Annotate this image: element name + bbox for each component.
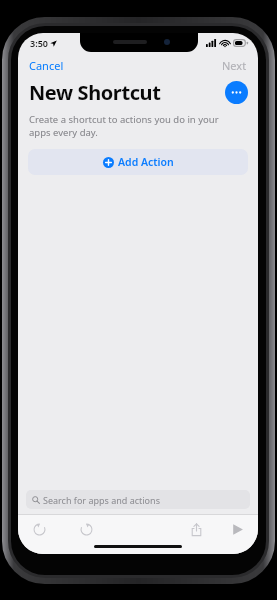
staticText: New Shortcut (29, 79, 161, 106)
button[interactable]: Run (227, 519, 247, 539)
staticText: 3:50 (30, 37, 48, 49)
staticText: Cancel (29, 58, 64, 73)
button[interactable]: Add Action (28, 149, 248, 175)
staticText: Add Action (118, 155, 174, 169)
button[interactable]: Share (186, 519, 206, 539)
button[interactable]: Search for apps and actions (26, 490, 250, 509)
button[interactable]: More options (225, 81, 248, 104)
button[interactable]: Redo (76, 519, 96, 539)
staticText: Search for apps and actions (43, 494, 160, 506)
staticText: Create a shortcut to actions you do in y… (29, 113, 242, 139)
button[interactable]: Next (212, 53, 258, 78)
staticText: Next (222, 58, 247, 73)
button[interactable]: Undo (29, 519, 49, 539)
button[interactable]: Cancel (18, 53, 74, 78)
